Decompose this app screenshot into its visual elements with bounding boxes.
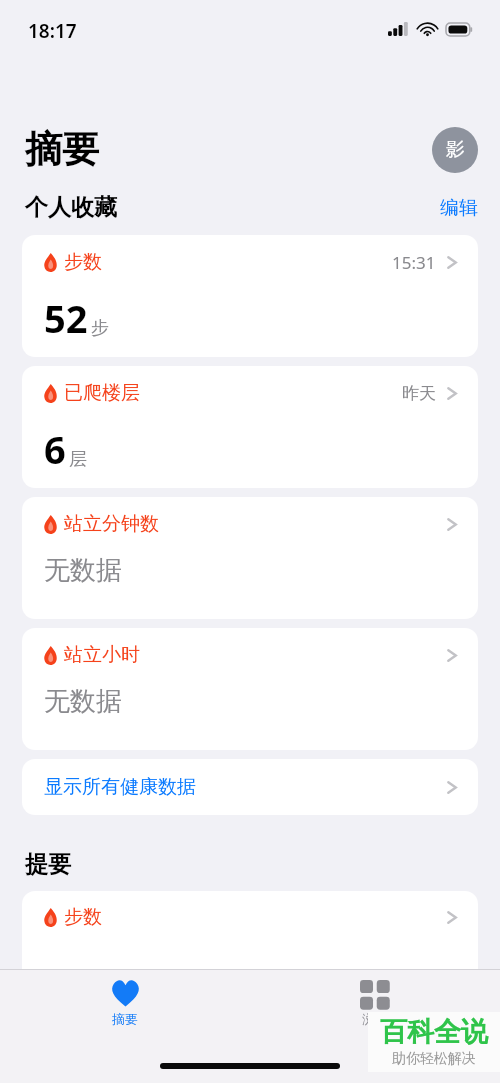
other: Open xyxy=(447,646,458,665)
staticText: 昨天 xyxy=(402,383,436,404)
button[interactable]: 编辑 xyxy=(440,196,478,220)
staticText: 助你轻松解决 xyxy=(392,1050,476,1068)
staticText: 6 xyxy=(44,423,66,475)
staticText: 无数据 xyxy=(44,554,122,587)
staticText: 层 xyxy=(69,448,87,471)
button[interactable]: 步数 xyxy=(22,235,478,357)
staticText: 浏览 xyxy=(362,1011,388,1027)
other: Open xyxy=(447,253,458,272)
staticText: 站立分钟数 xyxy=(64,512,159,536)
staticText: 提要 xyxy=(25,850,71,879)
button[interactable]: Profile xyxy=(432,127,478,173)
staticText: 个人收藏 xyxy=(25,193,117,222)
button[interactable]: 站立小时 xyxy=(22,628,478,750)
staticText: 摘要 xyxy=(112,1011,138,1027)
staticText: 影 xyxy=(446,138,465,162)
staticText: 已爬楼层 xyxy=(64,381,140,405)
button[interactable]: 站立分钟数 xyxy=(22,497,478,619)
other: Open xyxy=(447,778,458,797)
staticText: 摘要 xyxy=(25,126,99,173)
staticText: 显示所有健康数据 xyxy=(44,775,196,799)
staticText: 15:31 xyxy=(392,251,436,274)
staticText: 52 xyxy=(44,292,88,344)
button[interactable]: 摘要 xyxy=(62,979,188,1027)
staticText: 步 xyxy=(91,317,109,340)
other: Open xyxy=(447,384,458,403)
other: Open xyxy=(447,908,458,927)
button[interactable]: 浏览 xyxy=(312,980,438,1027)
button[interactable]: 步数 xyxy=(22,891,478,1011)
staticText: 站立小时 xyxy=(64,643,140,667)
other: Open xyxy=(447,515,458,534)
staticText: 编辑 xyxy=(440,196,478,220)
staticText: 百科全说 xyxy=(380,1015,488,1049)
button[interactable]: 已爬楼层 xyxy=(22,366,478,488)
staticText: 步数 xyxy=(64,905,102,929)
button[interactable]: 显示所有健康数据 xyxy=(22,759,478,815)
staticText: 18:17 xyxy=(28,18,77,44)
staticText: 无数据 xyxy=(44,685,122,718)
staticText: 步数 xyxy=(64,250,102,274)
